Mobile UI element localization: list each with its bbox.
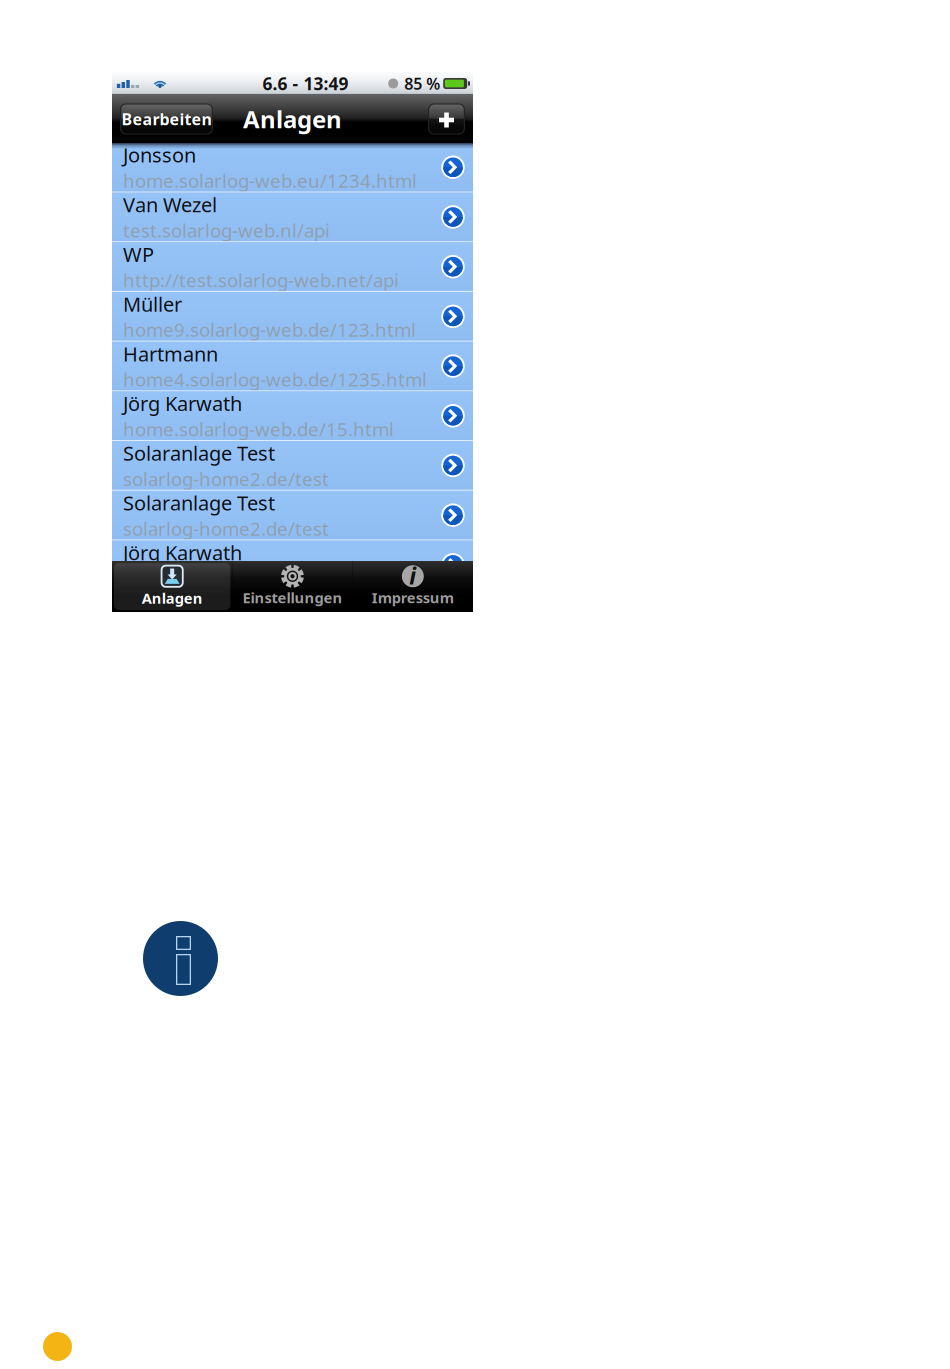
button[interactable]: Solaranlage Test — [112, 441, 473, 490]
button[interactable]: Bearbeiten — [120, 103, 213, 134]
staticText: Solaranlage Test — [123, 489, 275, 516]
staticText: home.solarlog-web.eu/1234.html — [123, 168, 417, 193]
staticText: 6.6 - 13:49 — [262, 72, 348, 95]
staticText: Einstellungen — [242, 588, 342, 607]
button[interactable]: Solaranlage Test — [112, 491, 473, 539]
staticText: Anlagen — [243, 103, 342, 135]
button[interactable]: Einstellungen — [232, 561, 353, 612]
button[interactable]: Add — [428, 103, 465, 134]
staticText: solarlog-home2.de/test — [123, 466, 329, 491]
button[interactable]: WP — [112, 242, 473, 291]
staticText: solarlog-home2.de/test — [123, 516, 329, 541]
staticText: i — [409, 561, 416, 591]
staticText: home4.solarlog-web.de/1235.html — [123, 367, 427, 392]
staticText: Van Wezel — [123, 191, 217, 218]
staticText: home.solarlog-web.de/16.html — [123, 566, 394, 590]
staticText: home9.solarlog-web.de/123.html — [123, 317, 416, 342]
staticText: 85 % — [404, 73, 440, 94]
button[interactable]: Jörg Karwath — [112, 391, 473, 440]
staticText: home.solarlog-web.de/15.html — [123, 417, 394, 441]
button[interactable]: Anlagen — [112, 561, 232, 612]
staticText: WP — [123, 241, 154, 268]
staticText: Solaranlage Test — [123, 440, 275, 466]
staticText: Hartmann — [123, 340, 218, 367]
button[interactable]: Hartmann — [112, 342, 473, 390]
staticText: Jörg Karwath — [123, 539, 242, 566]
staticText: http://test.solarlog-web.net/api — [123, 267, 399, 292]
staticText: Müller — [123, 291, 182, 317]
staticText: Impressum — [372, 588, 454, 607]
staticText: test.solarlog-web.nl/api — [123, 218, 330, 243]
button[interactable]: Jörg Karwath — [112, 541, 473, 589]
button[interactable]: Müller — [112, 292, 473, 341]
staticText: Jörg Karwath — [123, 390, 242, 417]
button[interactable]: Jonsson — [112, 143, 473, 191]
staticText: Jonsson — [123, 142, 196, 168]
button[interactable]: Van Wezel — [112, 193, 473, 241]
staticText: Anlagen — [142, 588, 203, 608]
staticText: Bearbeiten — [121, 108, 211, 130]
button[interactable]: i — [353, 561, 473, 612]
